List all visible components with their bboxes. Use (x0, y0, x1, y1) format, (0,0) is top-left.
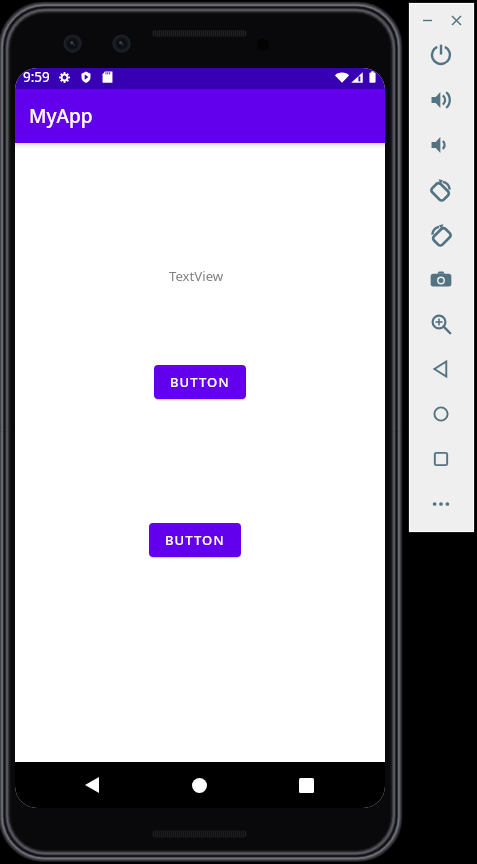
button[interactable]: Home (177, 763, 221, 807)
button[interactable]: BUTTON (154, 365, 246, 399)
button[interactable]: Volume down (419, 123, 463, 167)
button[interactable]: Recent apps (284, 763, 328, 807)
button[interactable]: Take screenshot (419, 258, 463, 302)
button[interactable]: Home (419, 392, 463, 436)
button[interactable]: Power (419, 33, 463, 77)
button[interactable]: Back (419, 347, 463, 391)
button[interactable]: More (419, 482, 463, 526)
staticText: MyApp (29, 103, 93, 129)
staticText: TextView (169, 267, 224, 285)
button[interactable]: Volume up (419, 78, 463, 122)
button[interactable]: BUTTON (149, 523, 241, 557)
button[interactable]: Back (70, 763, 114, 807)
button[interactable]: Minimize (416, 9, 438, 31)
staticText: 9:59 (23, 68, 50, 86)
button[interactable]: Overview (419, 437, 463, 481)
button[interactable]: Rotate right (419, 213, 463, 257)
button[interactable]: Rotate left (419, 168, 463, 212)
staticText: BUTTON (165, 531, 225, 549)
button[interactable]: Zoom (419, 302, 463, 346)
button[interactable]: Close (445, 9, 467, 31)
staticText: BUTTON (170, 373, 230, 391)
